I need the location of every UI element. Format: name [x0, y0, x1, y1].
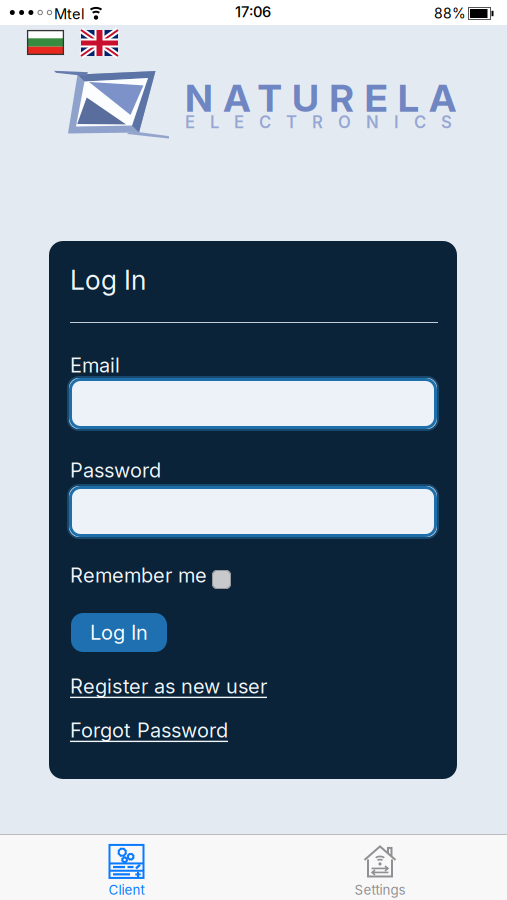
staticText: Password: [70, 458, 161, 482]
button[interactable]: Settings: [253, 840, 507, 900]
button[interactable]: English: [81, 30, 118, 56]
staticText: Mtel: [54, 5, 85, 23]
button[interactable]: Password: [67, 484, 439, 539]
staticText: ELECTRONICS: [185, 112, 452, 132]
staticText: Log In: [90, 620, 148, 645]
staticText: Log In: [70, 264, 146, 296]
staticText: 17:06: [235, 3, 271, 21]
button[interactable]: Remember me: [212, 570, 231, 589]
staticText: Email: [70, 353, 120, 377]
staticText: Client: [108, 882, 144, 898]
button[interactable]: Forgot Password: [70, 718, 228, 742]
button[interactable]: Email: [67, 376, 439, 431]
button[interactable]: Client: [0, 840, 253, 900]
staticText: NATURELA: [185, 75, 456, 121]
staticText: 88%: [434, 5, 466, 22]
staticText: Settings: [354, 882, 405, 898]
staticText: Remember me: [70, 563, 207, 587]
button[interactable]: Log In: [71, 613, 167, 652]
button[interactable]: Register as new user: [70, 674, 267, 698]
staticText: Register as new user: [70, 674, 267, 698]
staticText: Forgot Password: [70, 718, 228, 742]
button[interactable]: Bulgarian: [27, 30, 64, 55]
